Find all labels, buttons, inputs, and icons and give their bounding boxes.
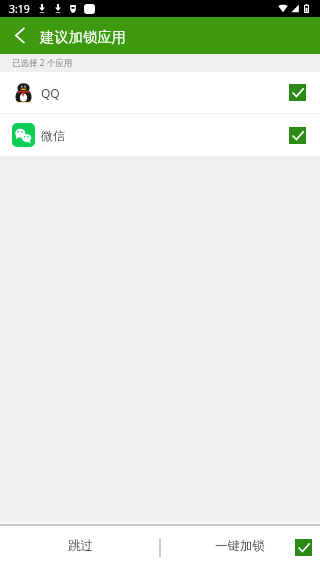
staticText: 跳过 xyxy=(68,538,93,554)
staticText: 一键加锁 xyxy=(215,538,265,554)
button[interactable]: Back xyxy=(0,17,34,54)
staticText: 3:19 xyxy=(9,2,30,16)
button[interactable]: 跳过 xyxy=(0,526,160,568)
staticText: QQ xyxy=(41,85,60,101)
button[interactable]: 一键加锁 xyxy=(162,526,320,568)
button[interactable]: QQ xyxy=(0,72,320,113)
staticText: 建议加锁应用 xyxy=(40,28,126,46)
button[interactable]: 微信 xyxy=(0,114,320,156)
staticText: 微信 xyxy=(41,128,65,143)
staticText: 已选择 2 个应用 xyxy=(12,57,73,69)
